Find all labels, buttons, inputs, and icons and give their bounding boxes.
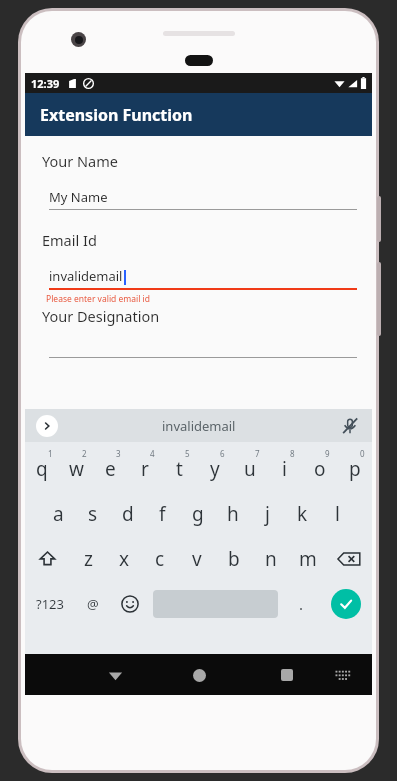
staticText: t [176,456,183,482]
staticText: 5 [185,448,190,459]
staticText: g [192,501,204,527]
button[interactable]: m [289,536,326,581]
button[interactable]: h [215,491,250,536]
staticText: s [88,501,98,527]
staticText: c [155,546,165,572]
staticText: 7 [255,448,260,459]
button[interactable]: n [252,536,289,581]
staticText: b [228,546,240,572]
staticText: x [119,546,130,572]
button[interactable]: . [283,581,320,627]
button[interactable]: j [250,491,285,536]
button[interactable]: g [180,491,215,536]
staticText: i [282,456,287,482]
staticText: h [227,501,239,527]
staticText: u [244,456,256,482]
staticText: Extension Function [40,104,193,126]
staticText: d [122,501,134,527]
staticText: q [36,456,48,482]
staticText: invalidemail [162,417,236,435]
staticText: Your Designation [42,306,160,326]
button[interactable]: ?123 [25,581,74,627]
button[interactable]: r [127,447,162,491]
staticText: 2 [82,448,87,459]
button[interactable]: My Name [49,188,357,210]
staticText: a [53,501,64,527]
button[interactable]: c [142,536,178,581]
button[interactable]: o [302,447,337,491]
staticText: 1 [48,448,53,459]
staticText: f [159,501,166,527]
staticText: Email Id [42,230,97,250]
button[interactable]: Switch keyboard [328,660,358,690]
staticText: 8 [290,448,295,459]
button[interactable]: @ [74,581,111,627]
button[interactable]: u [232,447,267,491]
button[interactable]: Backspace [326,536,372,581]
staticText: j [265,501,270,527]
staticText: k [297,501,308,527]
staticText: 12:39 [31,76,60,91]
button[interactable]: invalidemail [49,267,357,290]
staticText: v [192,546,202,572]
staticText: r [141,456,149,482]
button[interactable]: a [41,491,75,536]
staticText: Your Name [42,151,118,171]
button[interactable]: Home [182,658,216,692]
staticText: p [349,456,361,482]
staticText: w [69,456,84,482]
button[interactable]: s [75,491,110,536]
staticText: . [299,594,304,614]
button[interactable]: t [162,447,197,491]
button[interactable]: Done [331,589,361,619]
button[interactable]: q [25,447,59,491]
button[interactable]: k [285,491,320,536]
staticText: l [335,501,340,527]
button[interactable]: More suggestions [36,415,58,437]
button[interactable]: b [215,536,252,581]
staticText: 9 [325,448,330,459]
button[interactable]: Shift [25,536,70,581]
staticText: ?123 [36,595,64,613]
button[interactable]: Emoji [111,581,148,627]
button[interactable]: z [70,536,106,581]
staticText: Please enter valid email id [46,293,151,305]
button[interactable]: v [178,536,215,581]
staticText: m [299,546,317,572]
button[interactable]: Voice input off [339,415,361,437]
staticText: o [314,456,326,482]
button[interactable]: x [106,536,142,581]
button[interactable]: i [267,447,302,491]
button[interactable]: f [145,491,180,536]
staticText: 0 [360,448,365,459]
button[interactable]: y [197,447,232,491]
button[interactable]: d [110,491,145,536]
button[interactable]: l [320,491,355,536]
button[interactable]: e [93,447,127,491]
button[interactable]: p [337,447,372,491]
button[interactable]: w [59,447,93,491]
staticText: n [265,546,277,572]
staticText: @ [87,595,99,613]
staticText: e [105,456,116,482]
button[interactable]: Recents [270,658,304,692]
button[interactable]: Back [98,658,132,692]
staticText: 3 [116,448,121,459]
button[interactable]: Extension Function [25,93,372,136]
staticText: 4 [150,448,155,459]
staticText: 6 [220,448,225,459]
staticText: My Name [49,188,108,206]
staticText: invalidemail [49,267,123,285]
staticText: y [210,456,220,482]
staticText: z [84,546,93,572]
